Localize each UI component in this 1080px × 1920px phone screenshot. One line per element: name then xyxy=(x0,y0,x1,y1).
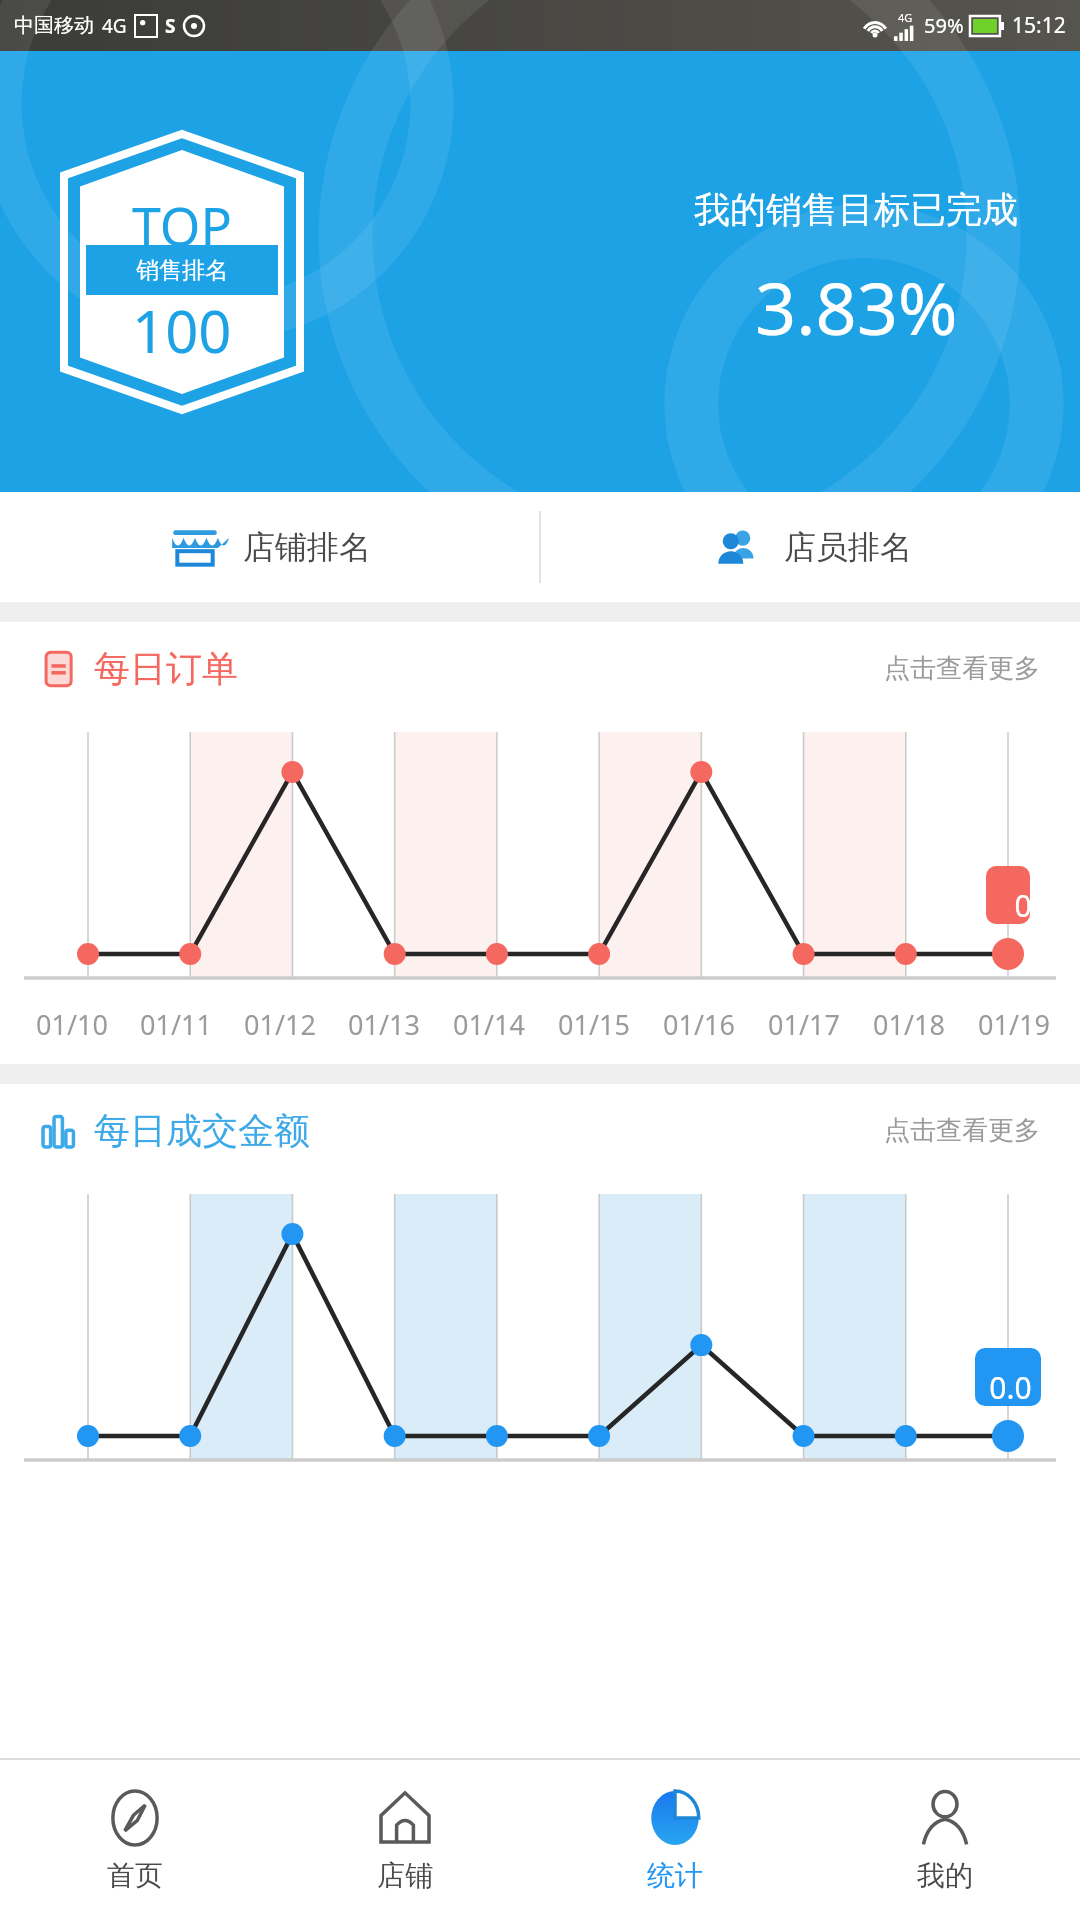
staticText: 01/13 xyxy=(348,1006,420,1043)
button[interactable]: 每日订单 xyxy=(40,646,238,691)
staticText: 店铺 xyxy=(377,1858,433,1893)
staticText: 01/19 xyxy=(978,1006,1050,1043)
staticText: 每日成交金额 xyxy=(94,1108,310,1153)
button[interactable]: 店铺排名 xyxy=(0,492,539,602)
staticText: 01/17 xyxy=(768,1006,840,1043)
button[interactable]: 店员排名 xyxy=(541,492,1080,602)
staticText: 我的销售目标已完成 xyxy=(694,187,1018,232)
button[interactable]: 每日成交金额 xyxy=(40,1108,310,1153)
staticText: 点击查看更多 xyxy=(884,1114,1040,1147)
staticText: 4G xyxy=(898,10,913,25)
staticText: 统计 xyxy=(647,1858,703,1893)
staticText: 01/14 xyxy=(453,1006,525,1043)
staticText: 店铺排名 xyxy=(243,527,371,567)
staticText: 01/12 xyxy=(244,1006,316,1043)
button[interactable]: 我的 xyxy=(810,1760,1080,1920)
staticText: 4G xyxy=(102,13,127,39)
staticText: 01/16 xyxy=(663,1006,735,1043)
staticText: 0.0 xyxy=(989,1367,1032,1408)
staticText: 100 xyxy=(132,291,232,370)
button[interactable]: 首页 xyxy=(0,1760,270,1920)
staticText: 店员排名 xyxy=(784,527,912,567)
button[interactable]: 统计 xyxy=(540,1760,810,1920)
staticText: 销售排名 xyxy=(136,256,228,285)
staticText: 首页 xyxy=(107,1858,163,1893)
staticText: 每日订单 xyxy=(94,646,238,691)
staticText: 中国移动 xyxy=(14,13,94,38)
staticText: 点击查看更多 xyxy=(884,652,1040,685)
staticText: 15:12 xyxy=(1012,11,1066,40)
staticText: S xyxy=(165,13,176,39)
staticText: 0 xyxy=(1014,885,1032,926)
button[interactable]: 店铺 xyxy=(270,1760,540,1920)
button[interactable]: 点击查看更多 xyxy=(884,652,1040,685)
staticText: 01/11 xyxy=(140,1006,212,1043)
staticText: 01/10 xyxy=(36,1006,108,1043)
staticText: 我的 xyxy=(917,1858,973,1893)
staticText: 01/18 xyxy=(873,1006,945,1043)
button[interactable]: 点击查看更多 xyxy=(884,1114,1040,1147)
staticText: 3.83% xyxy=(755,258,958,356)
staticText: 01/15 xyxy=(558,1006,630,1043)
staticText: 59% xyxy=(924,12,964,39)
staticText: TOP xyxy=(132,190,232,261)
